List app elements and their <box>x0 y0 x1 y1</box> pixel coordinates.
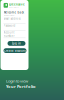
staticText: Your Portfolio <box>6 84 36 89</box>
staticText: Log in <box>12 42 21 45</box>
staticText: Password <box>3 24 15 27</box>
staticText: Account number <box>3 31 14 38</box>
staticText: Email address <box>3 17 20 20</box>
button[interactable]: Create account <box>3 48 26 53</box>
staticText: greensave <box>9 3 25 6</box>
staticText: Create account <box>4 49 26 52</box>
staticText: Welcome back <box>3 11 23 14</box>
staticText: Sign in to continue <box>3 14 14 16</box>
staticText: Login to view <box>6 78 28 84</box>
staticText: INVESTMENTS <box>9 6 19 8</box>
button[interactable]: Log in <box>7 41 25 46</box>
